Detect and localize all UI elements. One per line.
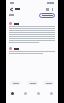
button[interactable]: Chat xyxy=(19,90,32,103)
button[interactable] xyxy=(39,13,55,18)
button[interactable] xyxy=(43,81,54,85)
button[interactable]: Spaces xyxy=(32,90,45,103)
button[interactable]: Archive xyxy=(45,7,50,12)
button[interactable] xyxy=(10,81,21,85)
button[interactable] xyxy=(27,81,38,85)
button[interactable]: More xyxy=(50,7,55,12)
button[interactable]: Back xyxy=(9,7,14,12)
button[interactable]: Meet xyxy=(45,90,58,103)
button[interactable]: Mail xyxy=(6,90,19,103)
